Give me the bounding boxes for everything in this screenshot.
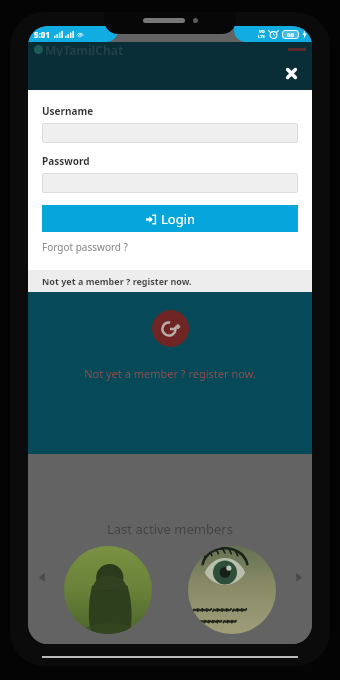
staticText: 5:01 bbox=[34, 29, 50, 40]
button[interactable]: Close bbox=[280, 62, 302, 84]
button[interactable]: Login bbox=[42, 205, 298, 232]
staticText: 66 bbox=[287, 31, 294, 39]
button[interactable]: Not yet a member ? register now. bbox=[28, 270, 312, 292]
staticText: VO bbox=[259, 29, 265, 34]
button[interactable] bbox=[42, 123, 298, 143]
staticText: Login bbox=[161, 210, 196, 228]
button[interactable]: Not yet a member ? register now. bbox=[84, 366, 256, 381]
staticText: Username bbox=[42, 104, 94, 118]
button[interactable]: Sign in with Google bbox=[152, 310, 189, 347]
staticText: MyTamilChat bbox=[45, 42, 124, 56]
button[interactable]: Forgot password ? bbox=[42, 240, 128, 254]
button[interactable]: Member photo bbox=[188, 546, 276, 634]
staticText: Last active members bbox=[107, 520, 233, 538]
button[interactable] bbox=[42, 173, 298, 193]
button[interactable]: Previous members bbox=[34, 569, 50, 585]
staticText: LTE bbox=[258, 34, 265, 39]
button[interactable]: Member photo bbox=[64, 546, 152, 634]
button[interactable]: Next members bbox=[290, 569, 306, 585]
staticText: Not yet a member ? register now. bbox=[42, 275, 192, 287]
staticText: Password bbox=[42, 154, 90, 168]
